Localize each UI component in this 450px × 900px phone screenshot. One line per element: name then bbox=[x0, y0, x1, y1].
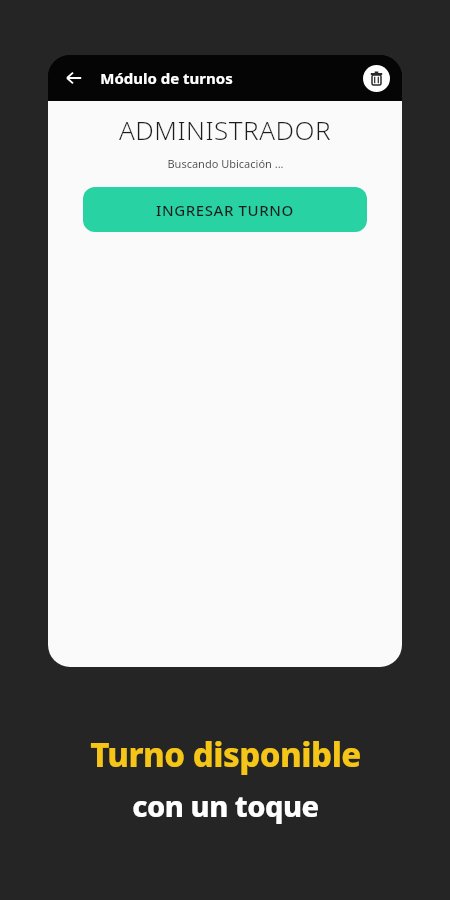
staticText: Módulo de turnos bbox=[100, 68, 233, 88]
staticText: Buscando Ubicación ... bbox=[167, 156, 284, 171]
staticText: Turno disponible bbox=[90, 732, 361, 777]
button[interactable]: INGRESAR TURNO bbox=[83, 187, 367, 232]
button[interactable]: Back bbox=[56, 60, 92, 96]
staticText: INGRESAR TURNO bbox=[156, 200, 294, 220]
button[interactable]: Delete bbox=[363, 65, 390, 92]
staticText: ADMINISTRADOR bbox=[119, 112, 331, 147]
staticText: con un toque bbox=[132, 786, 319, 825]
